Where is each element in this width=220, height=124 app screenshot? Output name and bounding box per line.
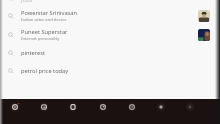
staticText: Internet personality (21, 36, 60, 42)
button[interactable]: petrol price today (0, 62, 220, 80)
button[interactable]: Messages (37, 100, 51, 114)
button[interactable]: Settings (154, 100, 168, 114)
button[interactable]: Weather (96, 100, 110, 114)
button[interactable]: Gallery (66, 100, 80, 114)
button[interactable]: Phone (183, 100, 197, 114)
button[interactable]: Powerstar Srinivasan (0, 6, 220, 25)
staticText: Indian actor and doctor (21, 17, 67, 23)
button[interactable]: pinterest (0, 44, 220, 62)
staticText: Puneet Superstar (21, 28, 68, 36)
staticText: petrol price today (21, 67, 69, 75)
staticText: pinterest (21, 49, 45, 57)
button[interactable]: Play Store (125, 100, 139, 114)
button[interactable]: Camera (8, 100, 22, 114)
button[interactable]: Puneet Superstar (0, 25, 220, 44)
staticText: Powerstar Srinivasan (21, 9, 78, 17)
staticText: jobs (21, 0, 33, 4)
